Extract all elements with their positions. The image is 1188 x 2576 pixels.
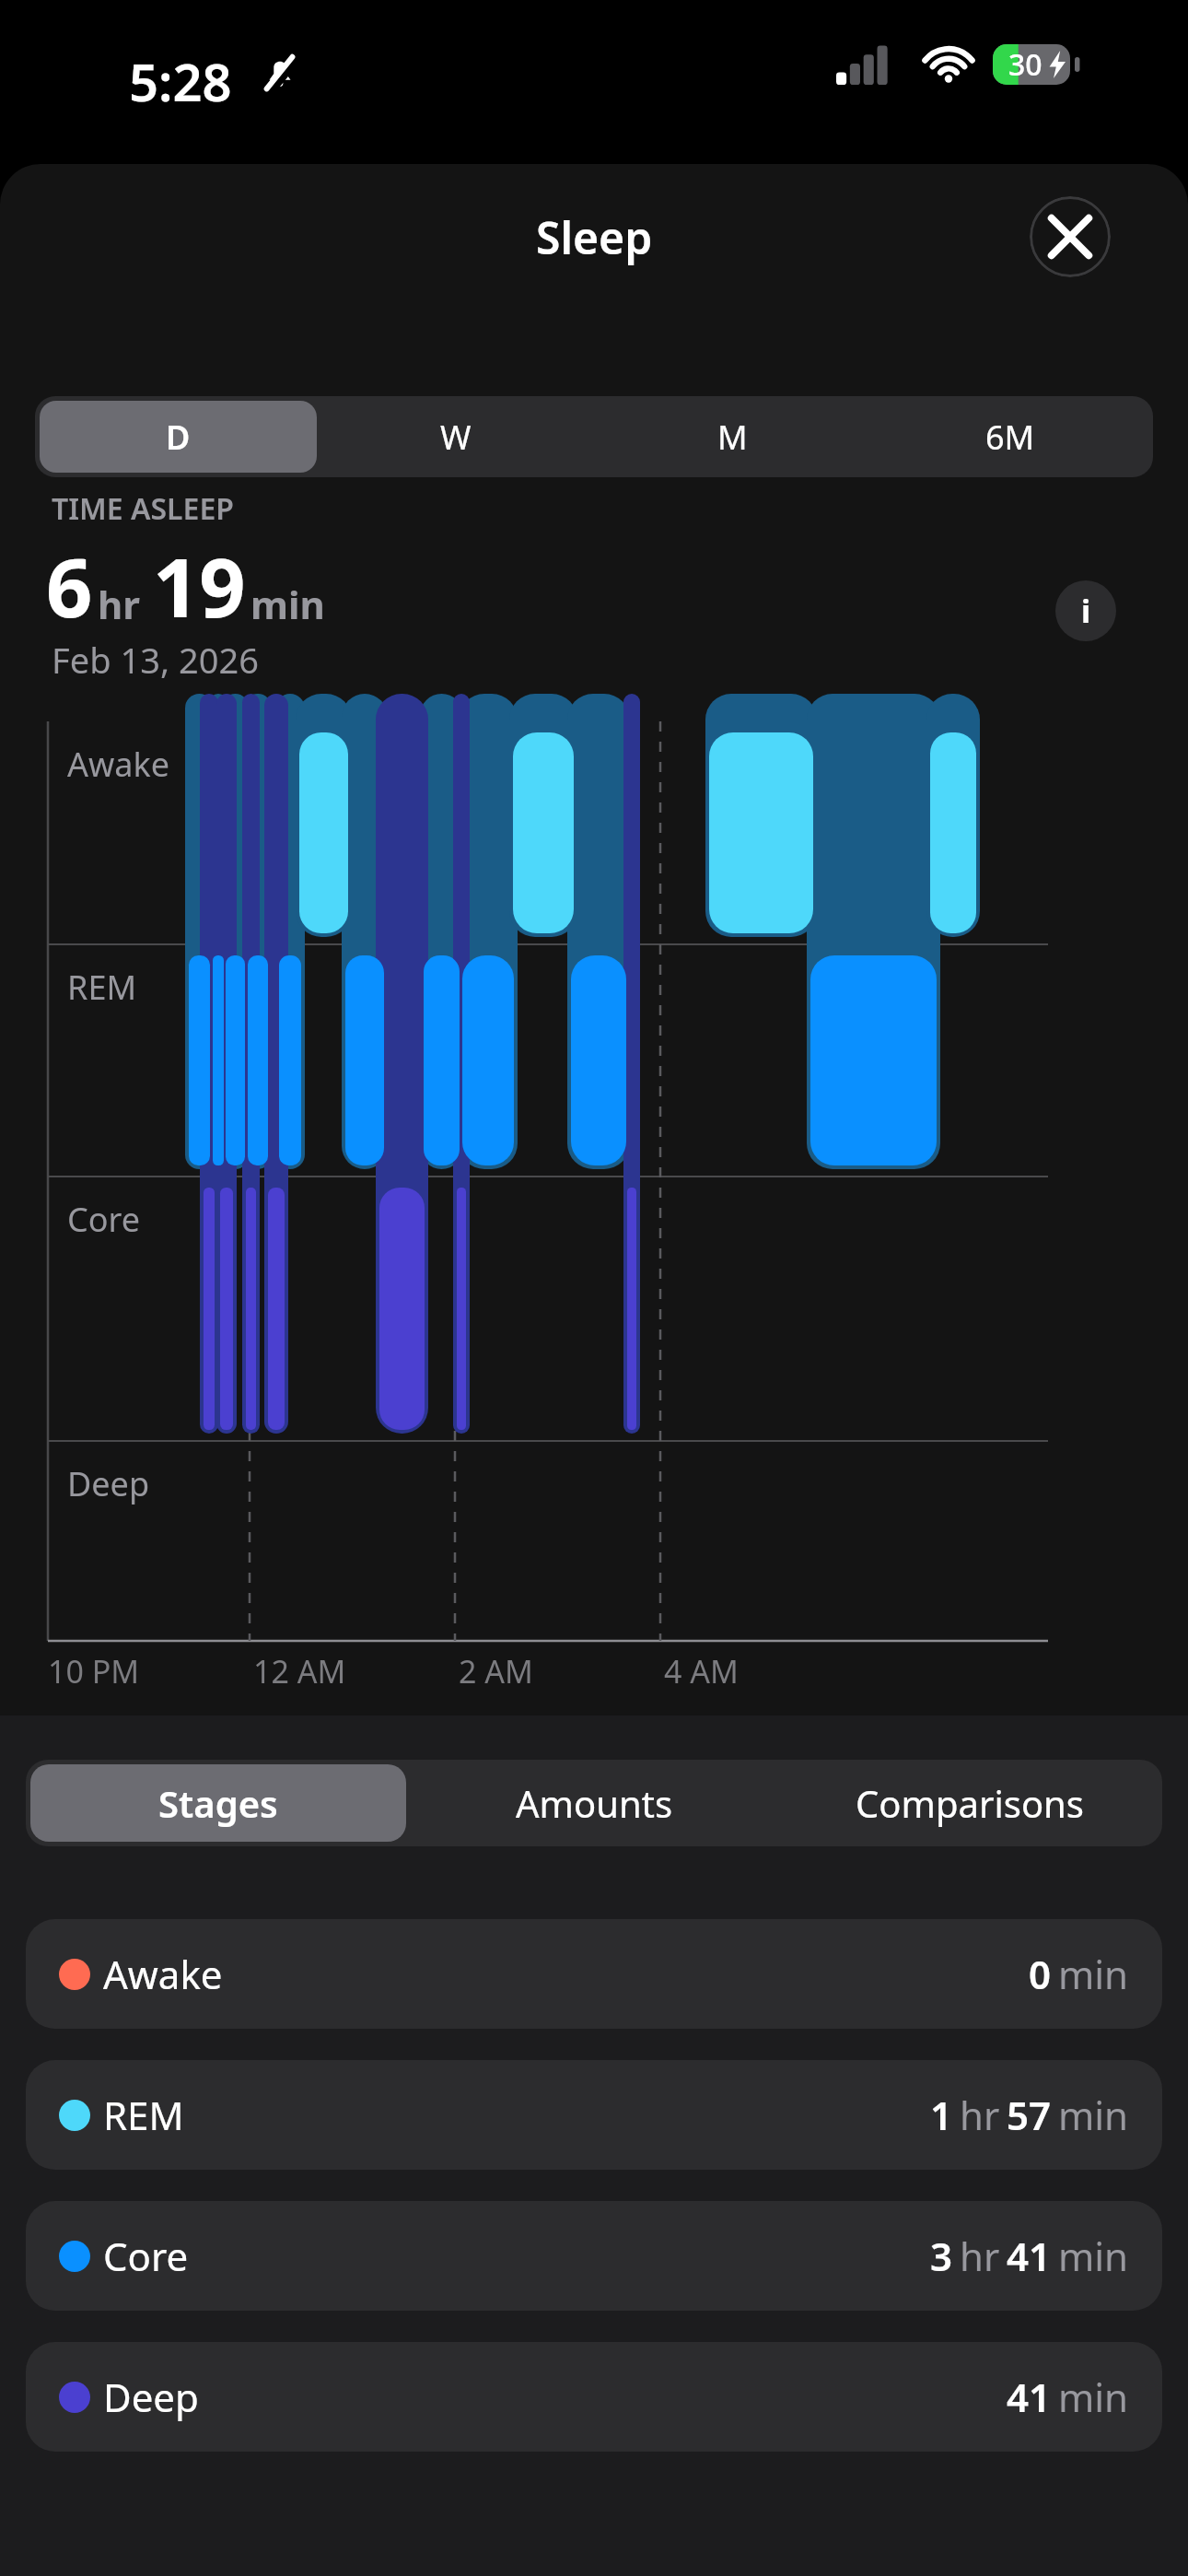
staticText: Amounts xyxy=(516,1778,673,1828)
staticText: Sleep xyxy=(536,207,653,267)
staticText: hr xyxy=(98,578,141,630)
staticText: min xyxy=(1058,1948,1129,2000)
staticText: min xyxy=(250,578,325,630)
staticText: 0 xyxy=(1029,1948,1052,2000)
staticText: 30 xyxy=(1008,44,1042,85)
staticText: 1 xyxy=(930,2089,953,2141)
staticText: 10 PM xyxy=(48,1650,140,1692)
staticText: 41 xyxy=(1007,2371,1052,2423)
staticText: REM xyxy=(103,2089,184,2141)
button[interactable]: Amounts xyxy=(406,1764,782,1842)
button[interactable]: Close xyxy=(1030,196,1111,277)
staticText: 4 AM xyxy=(664,1650,739,1692)
staticText: i xyxy=(1081,590,1091,632)
staticText: hr xyxy=(960,2230,1000,2282)
staticText: 3 xyxy=(930,2230,953,2282)
staticText: M xyxy=(717,415,748,460)
staticText: Feb 13, 2026 xyxy=(52,636,259,684)
staticText: hr xyxy=(960,2089,1000,2141)
staticText: 41 xyxy=(1007,2230,1052,2282)
staticText: Awake xyxy=(103,1948,223,2000)
staticText: min xyxy=(1058,2371,1129,2423)
staticText: Deep xyxy=(67,1461,150,1506)
staticText: 5:28 xyxy=(129,46,232,116)
button[interactable]: Comparisons xyxy=(782,1764,1158,1842)
staticText: 12 AM xyxy=(253,1650,346,1692)
staticText: min xyxy=(1058,2089,1129,2141)
button[interactable]: 6M xyxy=(871,401,1148,473)
staticText: Deep xyxy=(103,2371,199,2423)
staticText: Core xyxy=(103,2230,189,2282)
staticText: Stages xyxy=(158,1778,278,1828)
staticText: 6 xyxy=(46,531,93,641)
staticText: D xyxy=(166,415,191,460)
staticText: 2 AM xyxy=(459,1650,533,1692)
button[interactable]: M xyxy=(594,401,871,473)
staticText: 6M xyxy=(985,415,1035,460)
button[interactable]: Awake xyxy=(26,1919,1162,2029)
button[interactable]: Deep xyxy=(26,2342,1162,2452)
staticText: min xyxy=(1058,2230,1129,2282)
button[interactable]: Info xyxy=(1055,580,1116,641)
button[interactable]: D xyxy=(40,401,317,473)
button[interactable]: Stages xyxy=(30,1764,406,1842)
staticText: W xyxy=(440,415,472,460)
staticText: 19 xyxy=(153,531,246,641)
button[interactable]: W xyxy=(317,401,594,473)
staticText: Core xyxy=(67,1197,140,1242)
staticText: 57 xyxy=(1007,2089,1052,2141)
staticText: Awake xyxy=(67,742,170,787)
button[interactable]: REM xyxy=(26,2060,1162,2170)
staticText: TIME ASLEEP xyxy=(52,488,234,529)
staticText: Comparisons xyxy=(856,1778,1084,1828)
staticText: REM xyxy=(67,965,137,1010)
button[interactable]: Core xyxy=(26,2201,1162,2311)
